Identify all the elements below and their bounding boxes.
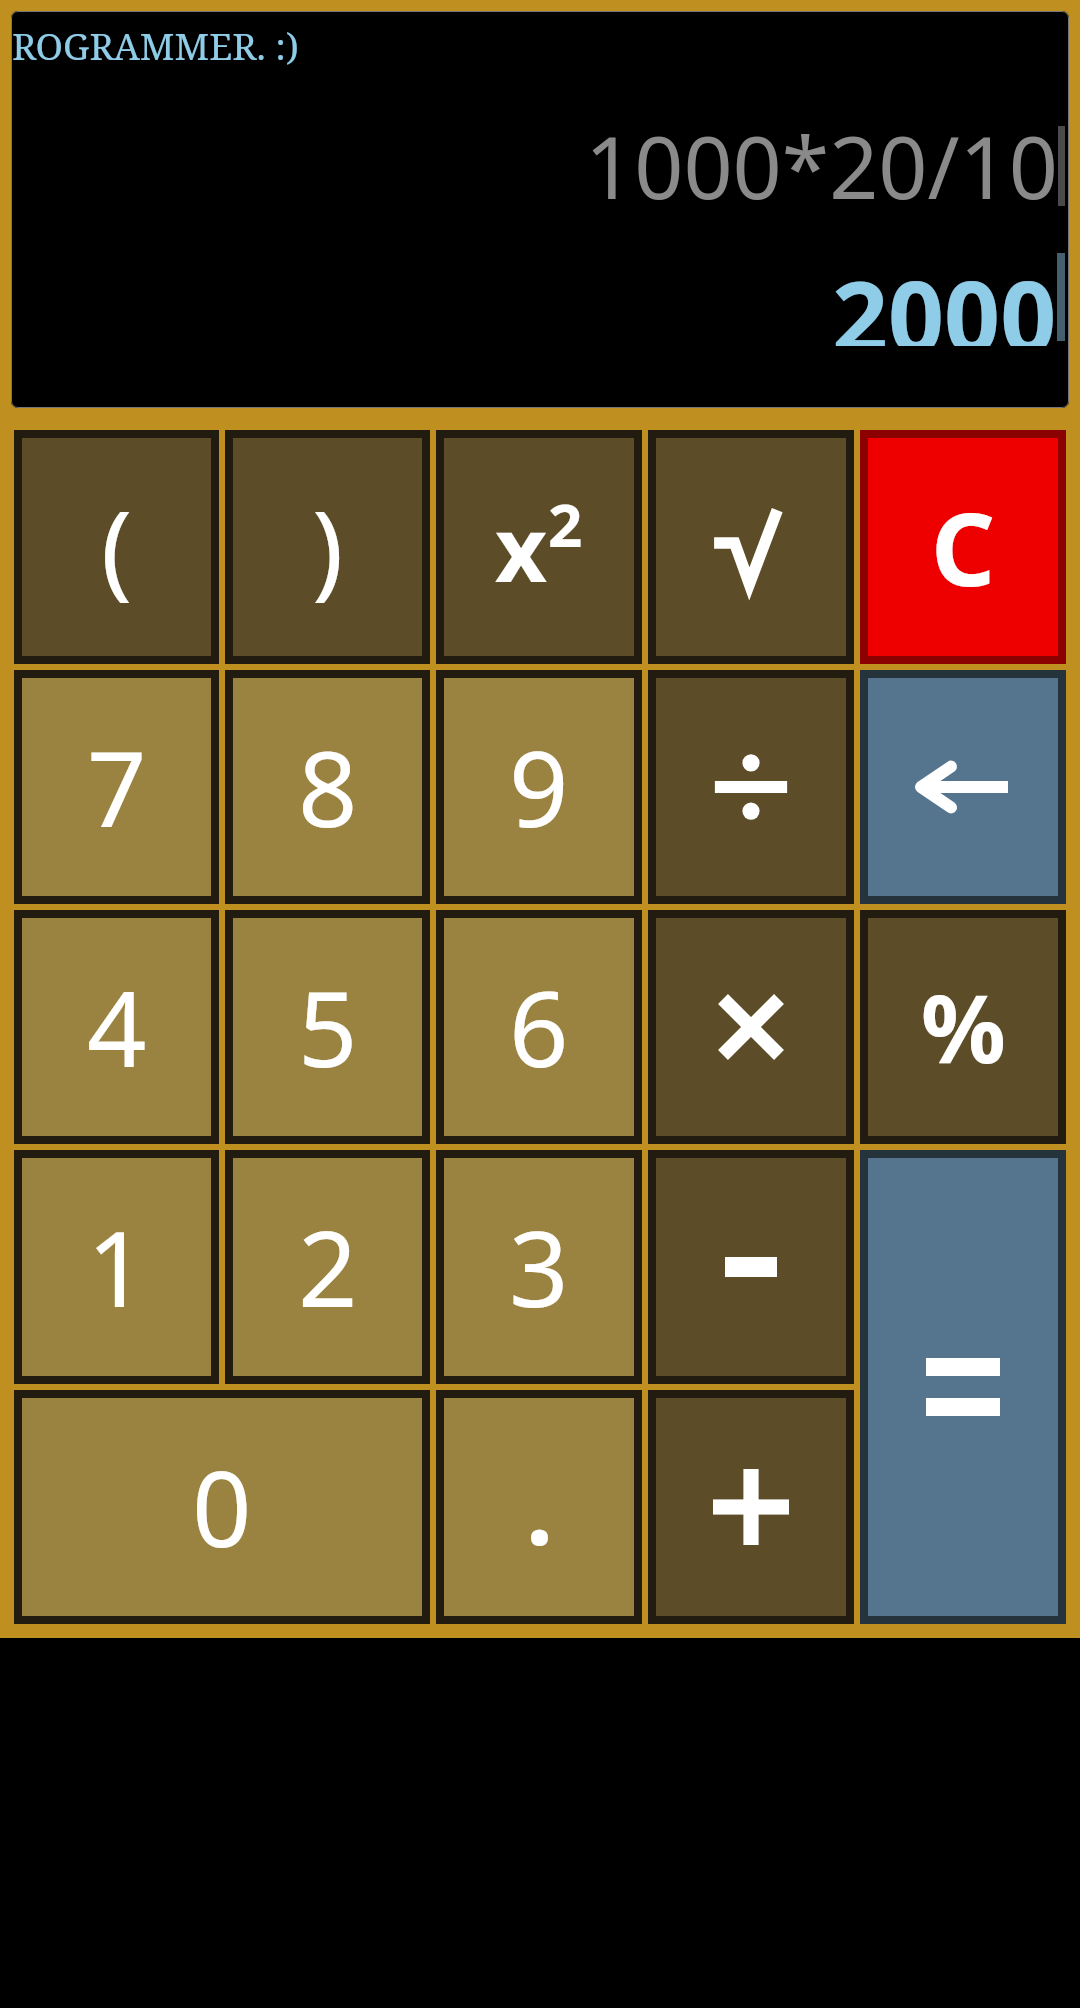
staticText: . [526, 1442, 553, 1573]
button[interactable]: 9 [444, 678, 634, 896]
button[interactable]: 0 [22, 1398, 422, 1616]
staticText: 5 [298, 956, 358, 1098]
staticText: x [495, 486, 548, 609]
button[interactable]: 5 [233, 918, 422, 1136]
button[interactable]: 7 [22, 678, 211, 896]
button[interactable]: Equals [868, 1158, 1058, 1616]
button[interactable]: C [868, 438, 1058, 656]
button[interactable]: Backspace [868, 678, 1058, 896]
staticText: 2000 [832, 248, 1057, 346]
staticText: 9 [509, 716, 569, 858]
button[interactable]: x squared [444, 438, 634, 656]
staticText: 2 [298, 1196, 358, 1338]
staticText: 4 [87, 956, 147, 1098]
staticText: ROGRAMMER. :) [12, 20, 299, 70]
staticText: C [931, 479, 996, 615]
button[interactable]: % [868, 918, 1058, 1136]
staticText: ) [312, 476, 344, 618]
button[interactable]: 2 [233, 1158, 422, 1376]
staticText: % [921, 963, 1006, 1091]
button[interactable]: . [444, 1398, 634, 1616]
button[interactable]: ( [22, 438, 211, 656]
button[interactable]: 3 [444, 1158, 634, 1376]
button[interactable]: Multiply [656, 918, 846, 1136]
staticText: 1 [87, 1196, 147, 1338]
staticText: 8 [298, 716, 358, 858]
staticText: 1000*20/10 [585, 107, 1058, 224]
button[interactable]: Square root [656, 438, 846, 656]
button[interactable]: ) [233, 438, 422, 656]
staticText: ( [101, 476, 133, 618]
staticText: 7 [87, 716, 147, 858]
button[interactable]: Minus [656, 1158, 846, 1376]
staticText: 0 [192, 1436, 252, 1578]
staticText: 3 [509, 1196, 569, 1338]
button[interactable]: 1 [22, 1158, 211, 1376]
button[interactable]: Plus [656, 1398, 846, 1616]
button[interactable]: Divide [656, 678, 846, 896]
button[interactable]: 6 [444, 918, 634, 1136]
staticText: 2 [548, 483, 583, 565]
button[interactable]: 8 [233, 678, 422, 896]
button[interactable]: 4 [22, 918, 211, 1136]
staticText: 6 [509, 956, 569, 1098]
